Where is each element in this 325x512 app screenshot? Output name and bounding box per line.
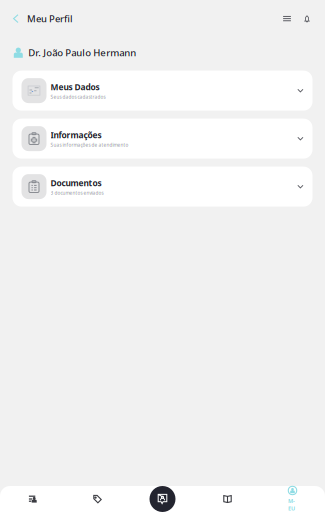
staticText: Meu Perfil bbox=[27, 12, 73, 25]
staticText: Documentos bbox=[50, 177, 101, 189]
button[interactable]: Conteúdos bbox=[195, 486, 260, 512]
staticText: Informações bbox=[50, 129, 101, 141]
button[interactable]: Etiquetas bbox=[65, 486, 130, 512]
button[interactable]: Meu Perfil bbox=[260, 486, 325, 512]
staticText: Dr. João Paulo Hermann bbox=[28, 46, 136, 59]
staticText: Meus Dados bbox=[50, 81, 99, 93]
button[interactable]: Meus Dados bbox=[12, 71, 312, 111]
button[interactable]: Informações bbox=[12, 119, 312, 159]
staticText: MEU PERFIL bbox=[288, 497, 297, 512]
button[interactable]: Meu Perfil bbox=[0, 6, 81, 32]
button[interactable]: Agenda bbox=[0, 486, 65, 512]
staticText: 3 documentos enviados bbox=[50, 190, 103, 196]
button[interactable]: Carteirinha bbox=[149, 486, 175, 512]
button[interactable]: Menu bbox=[277, 9, 297, 29]
staticText: Suas informações de atendimento bbox=[50, 142, 128, 148]
staticText: Seus dados cadastrados bbox=[50, 94, 105, 100]
button[interactable]: Notificações bbox=[297, 9, 317, 29]
button[interactable]: Documentos bbox=[12, 167, 312, 207]
